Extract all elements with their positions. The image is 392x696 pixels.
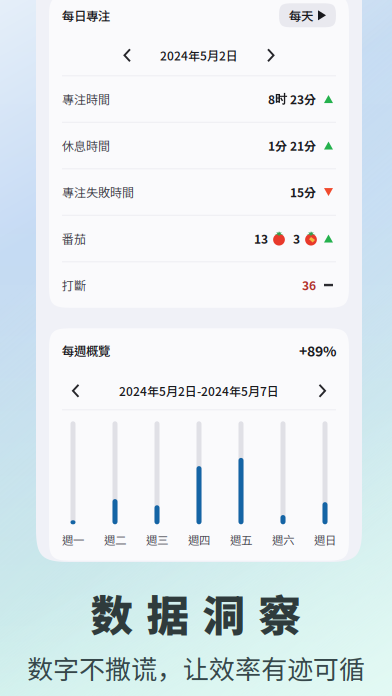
staticText: 週四 (188, 531, 210, 548)
staticText: 專注失敗時間 (62, 183, 134, 201)
staticText: 每日專注 (62, 6, 110, 24)
staticText: 每週概覽 (62, 341, 110, 359)
staticText: 每天 (289, 6, 313, 24)
button[interactable]: Next week (312, 378, 333, 404)
staticText: 番茄 (62, 230, 86, 247)
button[interactable]: 休息時間 (49, 123, 349, 168)
button[interactable]: 專注失敗時間 (49, 169, 349, 215)
button[interactable]: 打斷 (49, 262, 349, 308)
staticText: 2024年5月2日 (160, 47, 238, 64)
staticText: 週日 (314, 531, 336, 548)
staticText: 週五 (230, 531, 252, 548)
staticText: 8时 23分 (268, 90, 316, 108)
staticText: 週二 (104, 531, 126, 548)
staticText: 專注時間 (62, 90, 110, 108)
staticText: 3 (293, 230, 300, 247)
button[interactable]: 每天 (279, 3, 336, 27)
staticText: 13 (254, 230, 268, 247)
button[interactable]: 番茄 (49, 216, 349, 261)
staticText: 数字不撒谎，让效率有迹可循 (27, 649, 365, 686)
staticText: 週六 (272, 531, 294, 548)
staticText: 数据洞察 (90, 582, 301, 644)
staticText: 36 (302, 276, 316, 294)
staticText: 15分 (290, 183, 316, 201)
button[interactable]: Previous day (116, 42, 137, 68)
staticText: +89% (299, 340, 336, 360)
staticText: 1分 21分 (268, 137, 316, 154)
staticText: 打斷 (62, 276, 86, 294)
button[interactable]: Next day (261, 42, 281, 68)
button[interactable]: 專注時間 (49, 76, 349, 122)
staticText: 2024年5月2日-2024年5月7日 (119, 382, 279, 399)
button[interactable]: Previous week (65, 378, 85, 404)
staticText: 休息時間 (62, 137, 110, 154)
staticText: 週一 (62, 531, 84, 548)
staticText: 週三 (146, 531, 168, 548)
